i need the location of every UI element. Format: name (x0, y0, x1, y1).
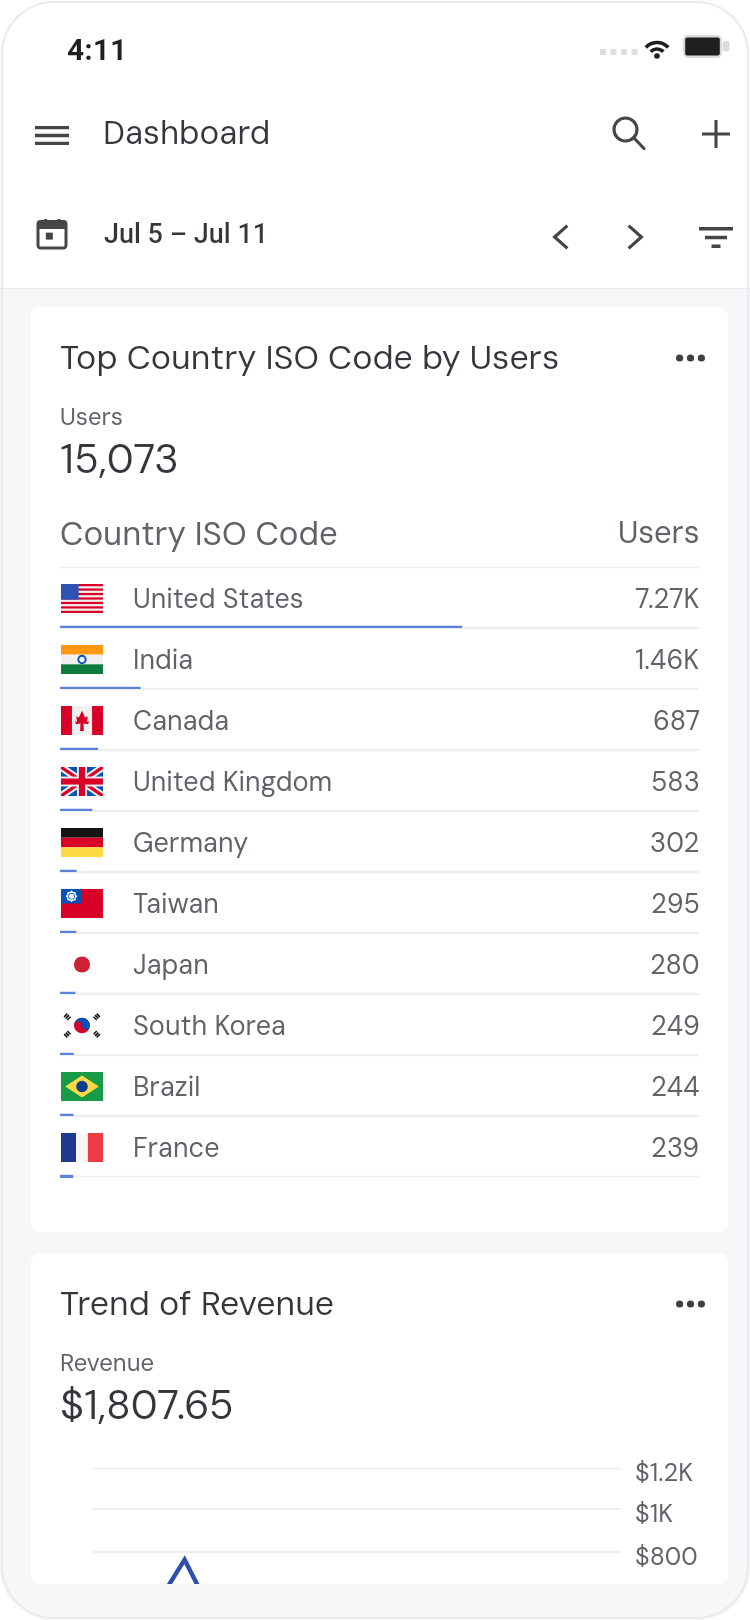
button[interactable]: France (31, 1116, 728, 1177)
staticText: 4:11 (67, 32, 128, 67)
button[interactable]: United States (31, 567, 728, 628)
button[interactable]: India (31, 628, 728, 689)
staticText: 239 (651, 1130, 700, 1165)
staticText: $1,807.65 (60, 1378, 234, 1431)
staticText: France (133, 1130, 220, 1165)
button[interactable]: Filter (679, 200, 750, 274)
staticText: 244 (651, 1069, 700, 1104)
staticText: Top Country ISO Code by Users (60, 335, 560, 379)
staticText: India (133, 642, 194, 677)
button[interactable]: Germany (31, 811, 728, 872)
staticText: Dashboard (103, 111, 271, 154)
staticText: 583 (651, 764, 700, 799)
button[interactable]: Add (680, 98, 750, 170)
button[interactable]: Trend of Revenue (31, 1253, 728, 1584)
staticText: United States (133, 581, 304, 616)
button[interactable]: Taiwan (31, 872, 728, 933)
staticText: 295 (651, 886, 700, 921)
staticText: South Korea (133, 1008, 286, 1043)
button[interactable]: Open navigation menu (16, 99, 88, 171)
staticText: Country ISO Code (60, 512, 338, 555)
staticText: Revenue (60, 1347, 155, 1378)
button[interactable]: Brazil (31, 1055, 728, 1116)
staticText: 302 (650, 825, 700, 860)
button[interactable]: Select date range (14, 196, 89, 271)
staticText: 249 (651, 1008, 700, 1043)
staticText: Jul 5 – Jul 11 (104, 218, 269, 250)
staticText: 1.46K (635, 642, 700, 677)
staticText: Users (60, 401, 124, 432)
staticText: 7.27K (635, 581, 700, 616)
button[interactable]: More options (664, 332, 716, 384)
staticText: 280 (650, 947, 700, 982)
button[interactable]: More options (664, 1278, 716, 1330)
button[interactable]: Canada (31, 689, 728, 750)
button[interactable]: Japan (31, 933, 728, 994)
staticText: Users (618, 512, 700, 552)
staticText: Canada (133, 703, 230, 738)
staticText: Brazil (133, 1069, 201, 1104)
staticText: Germany (133, 825, 249, 860)
button[interactable]: Search (592, 97, 664, 169)
button[interactable]: Next period (598, 200, 672, 274)
button[interactable]: United Kingdom (31, 750, 728, 811)
staticText: Trend of Revenue (60, 1281, 335, 1325)
staticText: $1K (635, 1497, 673, 1530)
button[interactable]: Previous period (524, 200, 598, 274)
staticText: 687 (653, 703, 700, 738)
staticText: $1.2K (635, 1456, 693, 1489)
staticText: United Kingdom (133, 764, 333, 799)
staticText: Japan (133, 947, 209, 982)
button[interactable]: South Korea (31, 994, 728, 1055)
button[interactable]: Top Country ISO Code by Users (31, 307, 728, 1232)
staticText: 15,073 (60, 432, 179, 485)
staticText: $800 (635, 1540, 698, 1573)
staticText: Taiwan (133, 886, 219, 921)
